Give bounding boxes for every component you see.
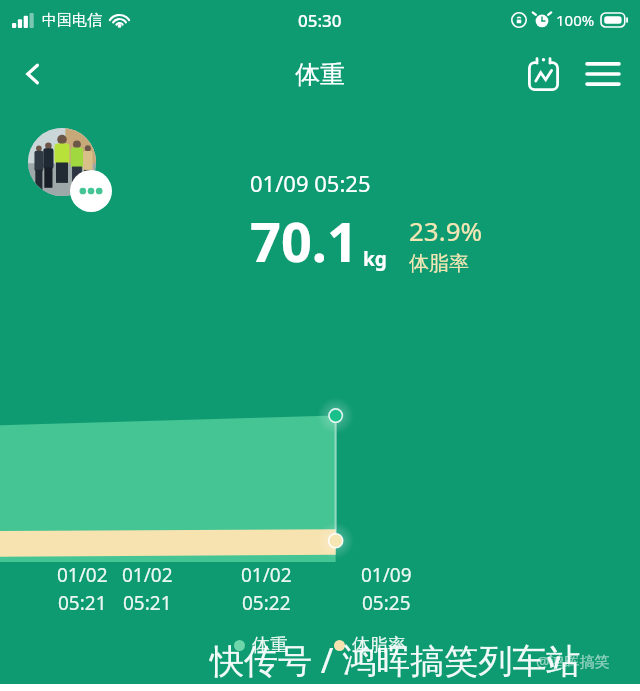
staticText: 01/09 xyxy=(361,562,412,588)
staticText: 体脂率 xyxy=(352,634,406,657)
staticText: 05:25 xyxy=(362,590,411,616)
staticText: 01/02 xyxy=(57,562,108,588)
staticText: @鸿晖搞笑 xyxy=(536,651,610,671)
staticText: 05:30 xyxy=(298,9,342,32)
staticText: 快传号 / 鸿晖搞笑列车站 xyxy=(210,637,581,683)
staticText: 05:22 xyxy=(242,590,291,616)
button[interactable]: Menu xyxy=(580,51,626,97)
staticText: 05:21 xyxy=(58,590,107,616)
staticText: 70.1 xyxy=(250,204,358,278)
staticText: 23.9% xyxy=(409,213,483,248)
button[interactable]: Records chart xyxy=(520,51,566,97)
staticText: 体脂率 xyxy=(409,251,469,276)
staticText: 05:21 xyxy=(123,590,172,616)
staticText: 中国电信 xyxy=(42,11,102,30)
button[interactable]: Weight chart xyxy=(0,402,640,562)
staticText: 01/09 05:25 xyxy=(250,168,371,198)
button[interactable]: 体脂率 xyxy=(334,634,406,657)
button[interactable]: 体重 xyxy=(234,634,288,657)
button[interactable]: Back xyxy=(6,47,60,101)
staticText: 01/02 xyxy=(241,562,292,588)
staticText: kg xyxy=(363,246,387,272)
staticText: 01/02 xyxy=(122,562,173,588)
staticText: 100% xyxy=(556,10,595,30)
staticText: 体重 xyxy=(252,634,288,657)
staticText: 体重 xyxy=(295,59,345,90)
button[interactable]: Profile xyxy=(28,128,112,212)
